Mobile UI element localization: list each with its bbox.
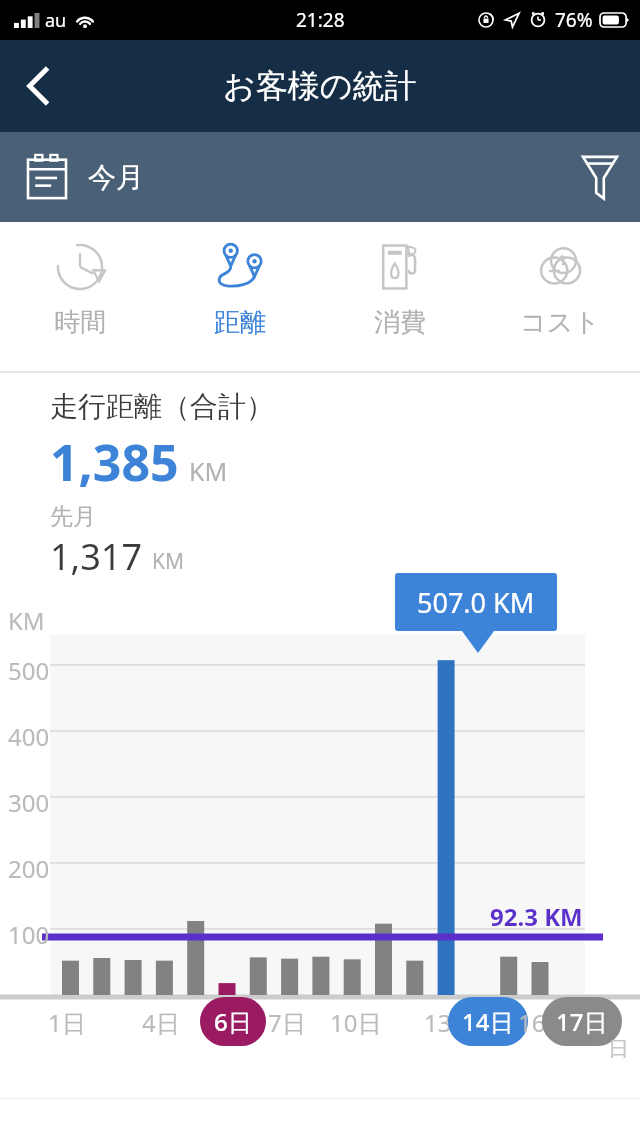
staticText: 時間 xyxy=(54,306,106,339)
staticText: 300 xyxy=(8,786,50,819)
staticText: お客様の統計 xyxy=(223,66,417,106)
button[interactable]: 今月 xyxy=(0,132,164,222)
staticText: 17日 xyxy=(556,1005,608,1038)
staticText: 400 xyxy=(8,720,50,753)
staticText: 10日 xyxy=(330,1006,382,1039)
staticText: 507.0 KM xyxy=(417,584,535,621)
staticText: KM xyxy=(8,604,45,637)
staticText: 7日 xyxy=(268,1006,306,1039)
button[interactable]: コスト xyxy=(480,222,640,371)
staticText: 100 xyxy=(8,918,50,951)
staticText: 1日 xyxy=(48,1006,86,1039)
staticText: 21:28 xyxy=(296,7,345,33)
button[interactable]: 6日 xyxy=(200,997,266,1046)
staticText: au xyxy=(45,8,67,33)
staticText: KM xyxy=(152,547,185,576)
staticText: 13日 xyxy=(424,1006,476,1039)
button[interactable]: 14日 xyxy=(448,997,528,1046)
staticText: 走行距離（合計） xyxy=(50,389,274,424)
staticText: 距離 xyxy=(214,306,266,339)
staticText: 1,385 xyxy=(50,428,179,496)
button[interactable]: 時間 xyxy=(0,222,160,371)
button[interactable]: Filter xyxy=(560,132,640,222)
staticText: 92.3 KM xyxy=(490,900,583,933)
button[interactable]: Back xyxy=(0,40,76,132)
staticText: 16日 xyxy=(518,1006,570,1039)
button[interactable]: 507.0 KM xyxy=(395,573,557,631)
staticText: 76% xyxy=(555,7,593,33)
staticText: 先月 xyxy=(50,502,96,531)
staticText: 4日 xyxy=(142,1006,180,1039)
staticText: 1,317 xyxy=(50,532,143,581)
staticText: 今月 xyxy=(88,160,144,195)
staticText: 日 xyxy=(608,1036,629,1062)
button[interactable]: 17日 xyxy=(542,997,622,1046)
staticText: 14日 xyxy=(462,1005,514,1038)
staticText: 消費 xyxy=(374,306,426,339)
staticText: 6日 xyxy=(214,1005,252,1038)
button[interactable]: 消費 xyxy=(320,222,480,371)
staticText: KM xyxy=(189,454,228,488)
button[interactable]: 距離 xyxy=(160,222,320,371)
staticText: コスト xyxy=(520,306,600,339)
staticText: 200 xyxy=(8,852,50,885)
staticText: 500 xyxy=(8,654,50,687)
